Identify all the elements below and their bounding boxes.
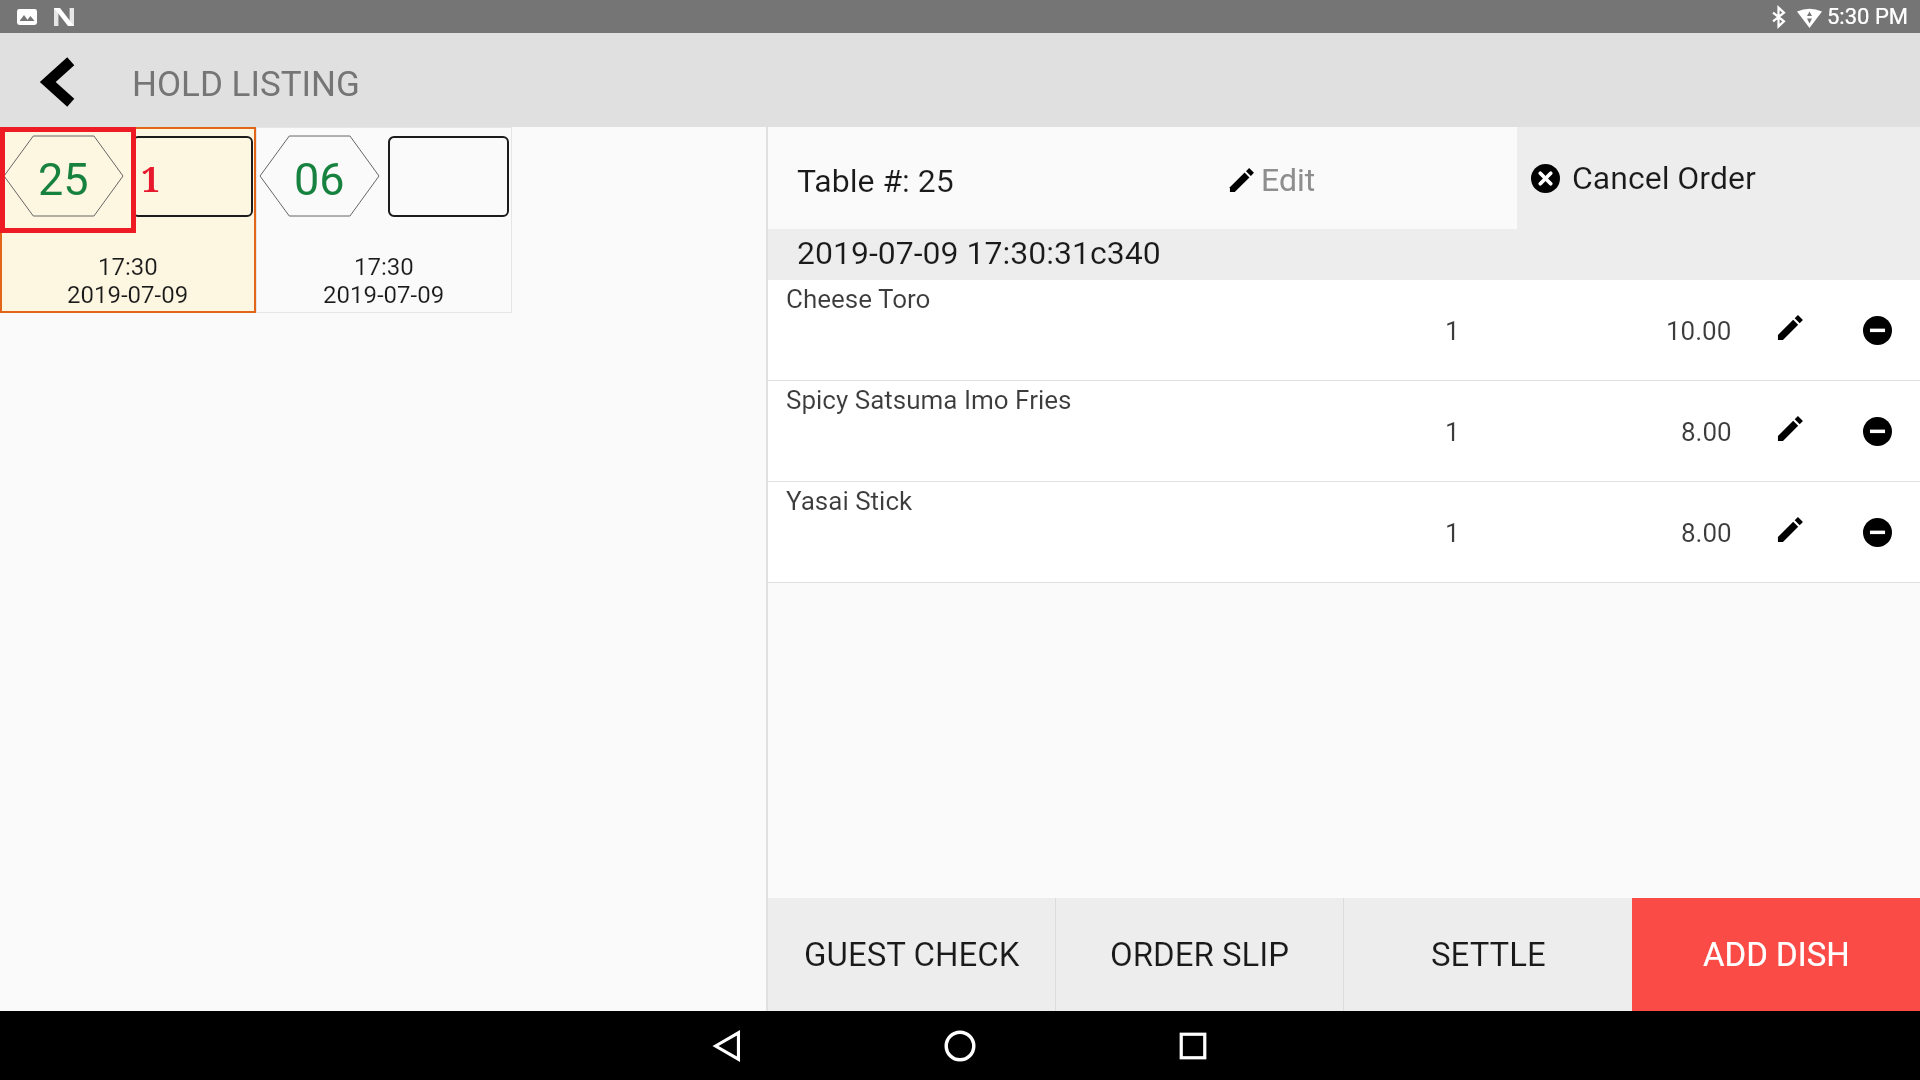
- staticText: 06: [294, 153, 345, 206]
- staticText: Table #: 25: [797, 162, 954, 200]
- staticText: SETTLE: [1431, 935, 1546, 974]
- staticText: Cheese Toro: [786, 284, 931, 314]
- button[interactable]: GUEST CHECK: [768, 898, 1055, 1011]
- button[interactable]: Remove item: [1851, 304, 1903, 356]
- staticText: Yasai Stick: [786, 486, 913, 516]
- staticText: 1: [1445, 417, 1460, 447]
- staticText: 17:30: [98, 253, 158, 281]
- button[interactable]: Edit: [1229, 161, 1316, 199]
- staticText: 1: [1445, 518, 1460, 548]
- staticText: 1: [141, 156, 161, 202]
- staticText: Spicy Satsuma Imo Fries: [786, 385, 1072, 415]
- button[interactable]: Cheese Toro: [768, 280, 1920, 381]
- button[interactable]: Remove item: [1851, 405, 1903, 457]
- button[interactable]: Edit item: [1764, 503, 1816, 555]
- button[interactable]: SETTLE: [1344, 898, 1632, 1011]
- staticText: 2019-07-09 17:30:31c340: [797, 234, 1161, 272]
- button[interactable]: 25: [0, 127, 256, 313]
- staticText: 8.00: [1681, 518, 1732, 548]
- button[interactable]: ADD DISH: [1632, 898, 1920, 1011]
- staticText: HOLD LISTING: [132, 64, 360, 105]
- button[interactable]: Edit item: [1764, 402, 1816, 454]
- button[interactable]: Home: [931, 1017, 989, 1075]
- staticText: 5:30 PM: [1827, 4, 1908, 30]
- button[interactable]: Back: [24, 49, 90, 115]
- button[interactable]: Edit item: [1764, 301, 1816, 353]
- staticText: ADD DISH: [1703, 935, 1850, 974]
- staticText: ORDER SLIP: [1110, 935, 1290, 974]
- staticText: 17:30: [354, 253, 414, 281]
- button[interactable]: 06: [256, 127, 512, 313]
- staticText: Cancel Order: [1572, 159, 1756, 197]
- staticText: Edit: [1261, 161, 1316, 199]
- button[interactable]: ORDER SLIP: [1056, 898, 1343, 1011]
- staticText: 2019-07-09: [323, 281, 445, 309]
- button[interactable]: Back: [698, 1017, 756, 1075]
- button[interactable]: Table #: 25: [768, 127, 1517, 229]
- staticText: GUEST CHECK: [804, 935, 1020, 974]
- button[interactable]: Yasai Stick: [768, 482, 1920, 583]
- staticText: 25: [38, 153, 89, 206]
- staticText: 8.00: [1681, 417, 1732, 447]
- button[interactable]: Cancel Order: [1517, 127, 1920, 229]
- button[interactable]: Remove item: [1851, 506, 1903, 558]
- button[interactable]: Recent apps: [1164, 1017, 1222, 1075]
- staticText: 10.00: [1666, 316, 1732, 346]
- button[interactable]: Spicy Satsuma Imo Fries: [768, 381, 1920, 482]
- staticText: 1: [1445, 316, 1460, 346]
- staticText: 2019-07-09: [67, 281, 189, 309]
